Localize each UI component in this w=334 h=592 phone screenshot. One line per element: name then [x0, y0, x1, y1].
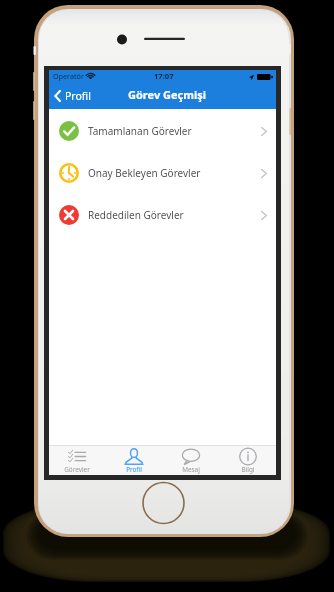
staticText: Operatör	[53, 71, 84, 81]
button[interactable]: Bilgi	[219, 446, 276, 475]
staticText: Onay Bekleyen Görevler	[88, 166, 201, 180]
staticText: Profil	[126, 465, 142, 474]
button[interactable]: Profil	[54, 84, 91, 109]
staticText: 17:07	[154, 71, 174, 81]
staticText: Profil	[65, 89, 91, 103]
button[interactable]: Tamamlanan Görevler	[49, 110, 276, 152]
staticText: Mesaj	[182, 465, 200, 474]
button[interactable]: Profil	[105, 446, 162, 475]
staticText: Tamamlanan Görevler	[88, 124, 192, 138]
button[interactable]: Onay Bekleyen Görevler	[49, 152, 276, 194]
staticText: Görev Geçmişi	[128, 87, 207, 102]
staticText: Görevler	[64, 465, 90, 474]
button[interactable]: Mesaj	[162, 446, 219, 475]
button[interactable]: Reddedilen Görevler	[49, 194, 276, 236]
button[interactable]: Görevler	[49, 446, 105, 475]
staticText: Bilgi	[241, 465, 255, 474]
staticText: Reddedilen Görevler	[88, 208, 184, 222]
